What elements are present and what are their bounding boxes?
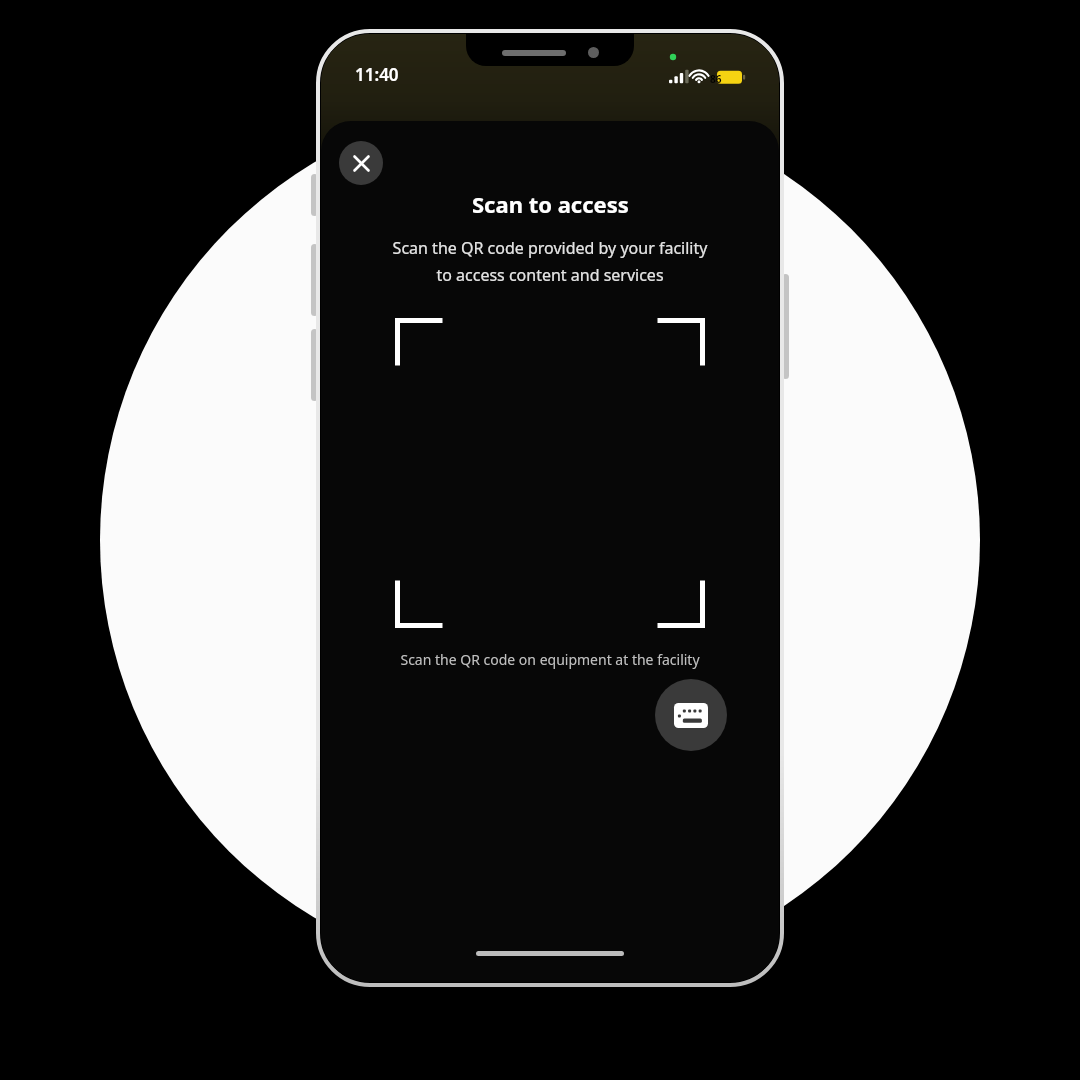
staticText: Scan the QR code on equipment at the fac…: [400, 650, 700, 669]
button[interactable]: Enter code manually: [655, 679, 727, 751]
staticText: Scan to access: [472, 189, 629, 219]
button[interactable]: Close: [339, 141, 383, 185]
staticText: 86: [710, 72, 722, 86]
staticText: Scan the QR code provided by your facili…: [337, 237, 763, 286]
staticText: 11:40: [355, 63, 399, 86]
